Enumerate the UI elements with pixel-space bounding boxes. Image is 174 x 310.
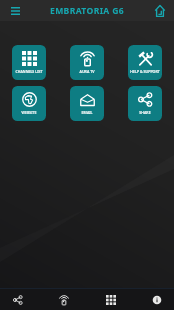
button[interactable]: EMAIL	[70, 86, 104, 121]
button[interactable]: AURA TV	[70, 45, 104, 80]
staticText: SHARE	[128, 110, 162, 115]
button[interactable]: WEBSITE	[12, 86, 46, 121]
button[interactable]: CHANNELS LIST	[12, 45, 46, 80]
staticText: CHANNELS LIST	[12, 69, 46, 74]
button[interactable]: HELP & SUPPORT	[128, 45, 162, 80]
staticText: AURA TV	[70, 69, 104, 74]
button[interactable]: Remote	[46, 289, 81, 310]
button[interactable]: SHARE	[128, 86, 162, 121]
staticText: HELP & SUPPORT	[128, 69, 162, 74]
staticText: WEBSITE	[12, 110, 46, 115]
button[interactable]: Info	[139, 289, 174, 310]
button[interactable]: Channels	[93, 289, 128, 310]
button[interactable]: Share	[0, 289, 35, 310]
staticText: EMBRATORIA G6	[50, 5, 125, 17]
staticText: EMAIL	[70, 110, 104, 115]
button[interactable]: Home	[151, 2, 169, 20]
button[interactable]: Menu	[6, 2, 24, 20]
